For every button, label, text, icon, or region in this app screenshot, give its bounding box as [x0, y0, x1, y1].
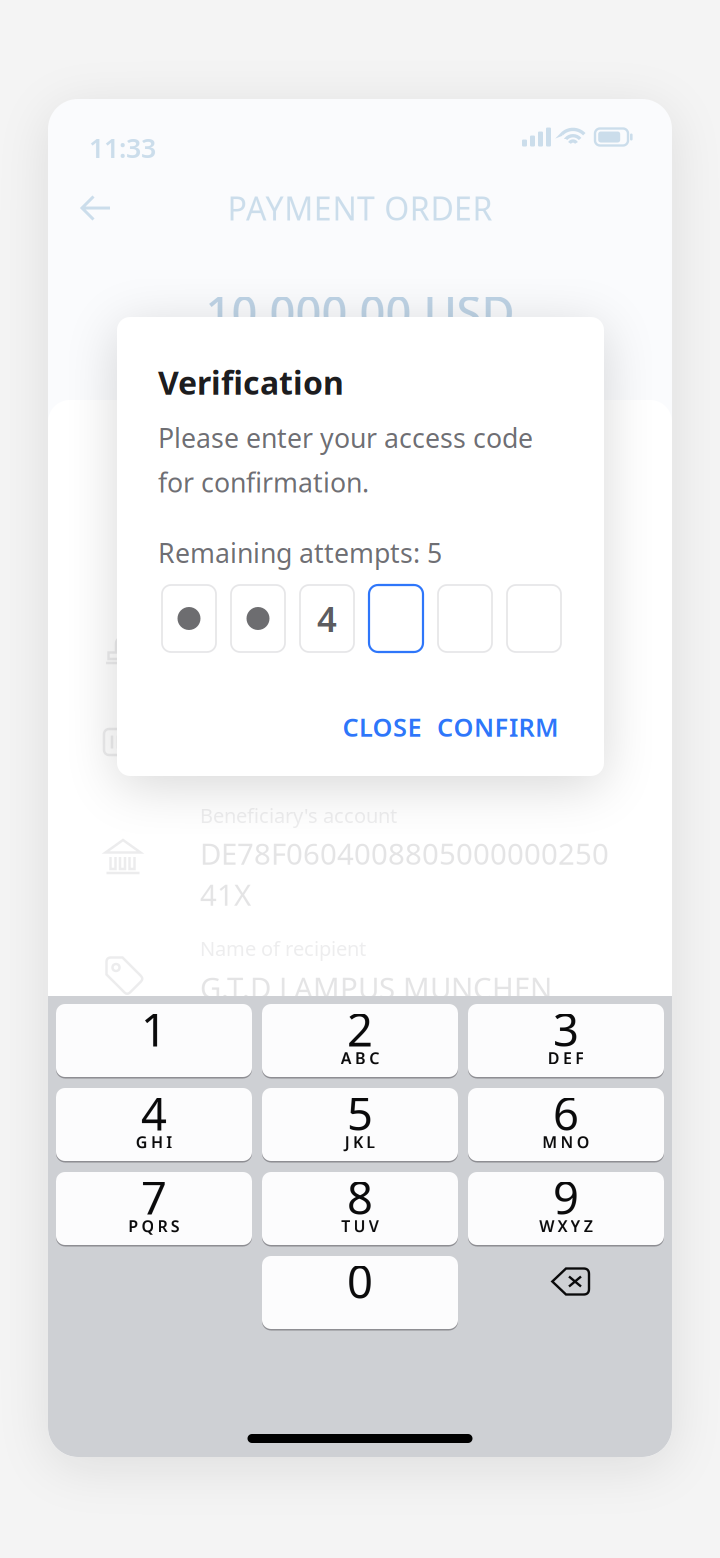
button[interactable]: 9: [468, 1172, 664, 1246]
staticText: PAYMENT ORDER: [227, 187, 493, 229]
staticText: L: [366, 1131, 375, 1153]
staticText: O: [577, 1131, 590, 1153]
staticText: LT59 3250 0049 5721 1862: [200, 726, 569, 765]
staticText: R: [158, 1215, 168, 1237]
staticText: 10 000.00 USD: [205, 282, 514, 342]
staticText: 3: [553, 999, 579, 1059]
staticText: Please enter your access code: [158, 420, 533, 455]
staticText: 4: [141, 1083, 167, 1143]
staticText: B: [355, 1047, 366, 1069]
button[interactable]: Delete: [468, 1256, 664, 1330]
staticText: 1: [141, 999, 167, 1059]
staticText: F: [575, 1047, 584, 1069]
staticText: CLOSE: [342, 710, 421, 744]
staticText: 11:33: [89, 130, 156, 165]
button[interactable]: Back: [65, 184, 127, 232]
button[interactable]: 4: [56, 1088, 252, 1162]
staticText: Y: [571, 1215, 581, 1237]
staticText: U: [353, 1215, 365, 1237]
staticText: 0: [347, 1251, 373, 1311]
staticText: V: [369, 1215, 379, 1237]
staticText: 4: [317, 595, 337, 641]
staticText: K: [353, 1131, 363, 1153]
staticText: 6: [553, 1083, 579, 1143]
staticText: CONFIRM: [437, 710, 559, 744]
staticText: S: [171, 1215, 180, 1237]
staticText: DE78F0604008805000000250: [200, 834, 609, 873]
staticText: N: [560, 1131, 573, 1153]
staticText: H: [151, 1131, 163, 1153]
staticText: SALARY TRANSFER: [200, 610, 452, 649]
button[interactable]: 5: [262, 1088, 458, 1162]
staticText: Remaining attempts: 5: [158, 535, 442, 570]
staticText: Beneficiary's account: [200, 802, 397, 829]
button[interactable]: 7: [56, 1172, 252, 1246]
staticText: J: [345, 1131, 350, 1153]
staticText: Verification: [158, 361, 344, 403]
staticText: A: [341, 1047, 352, 1069]
button[interactable]: 8: [262, 1172, 458, 1246]
button[interactable]: 1: [56, 1004, 252, 1078]
staticText: D: [548, 1047, 560, 1069]
staticText: Name of recipient: [200, 935, 366, 962]
button[interactable]: 2: [262, 1004, 458, 1078]
staticText: 8: [347, 1167, 373, 1227]
staticText: G: [136, 1131, 148, 1153]
staticText: Payer's account: [200, 699, 346, 726]
staticText: 2: [347, 999, 373, 1059]
staticText: 41X: [200, 875, 251, 914]
button[interactable]: CLOSE: [330, 703, 434, 751]
staticText: W: [539, 1215, 554, 1237]
staticText: I: [166, 1131, 172, 1153]
staticText: 5: [347, 1083, 373, 1143]
staticText: P: [128, 1215, 138, 1237]
staticText: Q: [141, 1215, 154, 1237]
staticText: X: [557, 1215, 567, 1237]
staticText: for confirmation.: [158, 464, 369, 500]
staticText: 9: [553, 1167, 579, 1227]
staticText: G.T.D LAMPUS MUNCHEN: [200, 968, 552, 1007]
button[interactable]: CONFIRM: [434, 703, 562, 751]
button[interactable]: 0: [262, 1256, 458, 1330]
staticText: M: [542, 1131, 557, 1153]
staticText: E: [563, 1047, 572, 1069]
staticText: C: [369, 1047, 379, 1069]
staticText: 7: [141, 1167, 167, 1227]
button[interactable]: 6: [468, 1088, 664, 1162]
staticText: Purpose of payment: [200, 583, 388, 610]
button[interactable]: 3: [468, 1004, 664, 1078]
staticText: Z: [584, 1215, 593, 1237]
staticText: T: [341, 1215, 350, 1237]
